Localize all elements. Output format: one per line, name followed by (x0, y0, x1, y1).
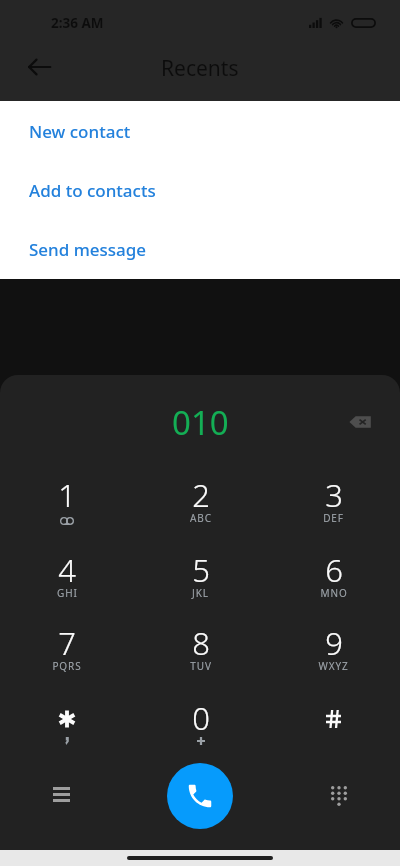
staticText: 3 (325, 474, 343, 516)
button[interactable]: 2 (134, 468, 267, 542)
button[interactable]: Dialpad (319, 776, 359, 816)
button[interactable]: Add to contacts (0, 160, 400, 219)
staticText: Send message (29, 238, 147, 261)
button[interactable]: Call (167, 763, 233, 829)
staticText: 9 (325, 622, 343, 664)
staticText: TUV (190, 659, 212, 673)
staticText: GHI (57, 586, 78, 600)
staticText: 0 (192, 697, 210, 739)
staticText: Add to contacts (29, 179, 156, 202)
button[interactable]: 5 (134, 543, 267, 617)
staticText: 8 (192, 622, 210, 664)
staticText: 7 (58, 622, 76, 664)
button[interactable]: More options (41, 774, 81, 814)
staticText: JKL (192, 586, 209, 600)
staticText: 2 (192, 474, 210, 516)
button[interactable]: 9 (267, 616, 400, 690)
button[interactable]: 7 (0, 616, 134, 690)
button[interactable]: New contact (0, 101, 400, 160)
staticText: ABC (190, 511, 212, 525)
button[interactable]: 4 (0, 543, 134, 617)
button[interactable]: Send message (0, 219, 400, 278)
staticText: 5 (192, 549, 210, 591)
button[interactable]: Back (19, 47, 59, 87)
staticText: New contact (29, 120, 131, 143)
staticText: Recents (161, 54, 239, 83)
button[interactable]: Backspace (343, 405, 377, 439)
staticText: PQRS (52, 659, 82, 673)
button[interactable]: 6 (267, 543, 400, 617)
staticText: MNO (320, 586, 348, 600)
button[interactable]: 0 (134, 691, 267, 765)
staticText: 6 (325, 549, 343, 591)
staticText: 010 (172, 400, 229, 445)
button[interactable] (0, 691, 134, 765)
button[interactable]: 1 (0, 468, 134, 542)
staticText: 1 (58, 474, 76, 516)
button[interactable]: 8 (134, 616, 267, 690)
button[interactable]: 3 (267, 468, 400, 542)
button[interactable] (267, 691, 400, 765)
staticText: WXYZ (318, 659, 349, 673)
staticText: DEF (323, 511, 344, 525)
staticText: 4 (58, 549, 76, 591)
staticText: 2:36 AM (51, 14, 104, 32)
